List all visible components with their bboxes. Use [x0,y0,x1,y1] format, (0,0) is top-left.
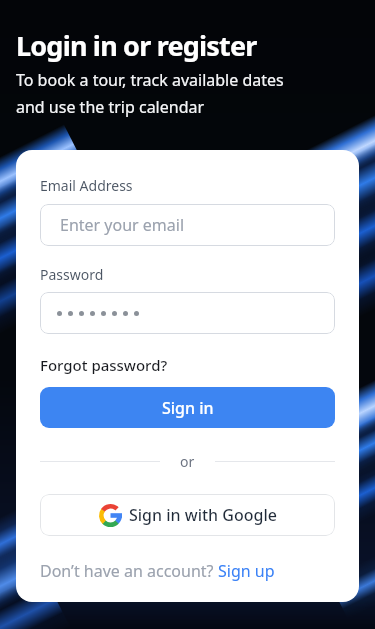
staticText: To book a tour, track available dates an… [16,69,284,118]
button[interactable] [40,292,335,334]
staticText: Login in or register [16,27,257,64]
staticText: or [180,452,195,470]
button[interactable]: Sign in with Google [40,494,335,536]
button[interactable]: Sign in [40,387,335,428]
staticText: Sign in with Google [129,504,277,526]
staticText: Enter your email [60,214,185,236]
button[interactable]: Enter your email [40,204,335,246]
button[interactable]: Sign up [218,560,275,582]
button[interactable]: Forgot password? [40,355,168,375]
staticText: Don’t have an account? [40,560,218,582]
staticText: Sign in [162,397,214,419]
staticText: Email Address [40,176,133,195]
staticText: Password [40,265,104,284]
